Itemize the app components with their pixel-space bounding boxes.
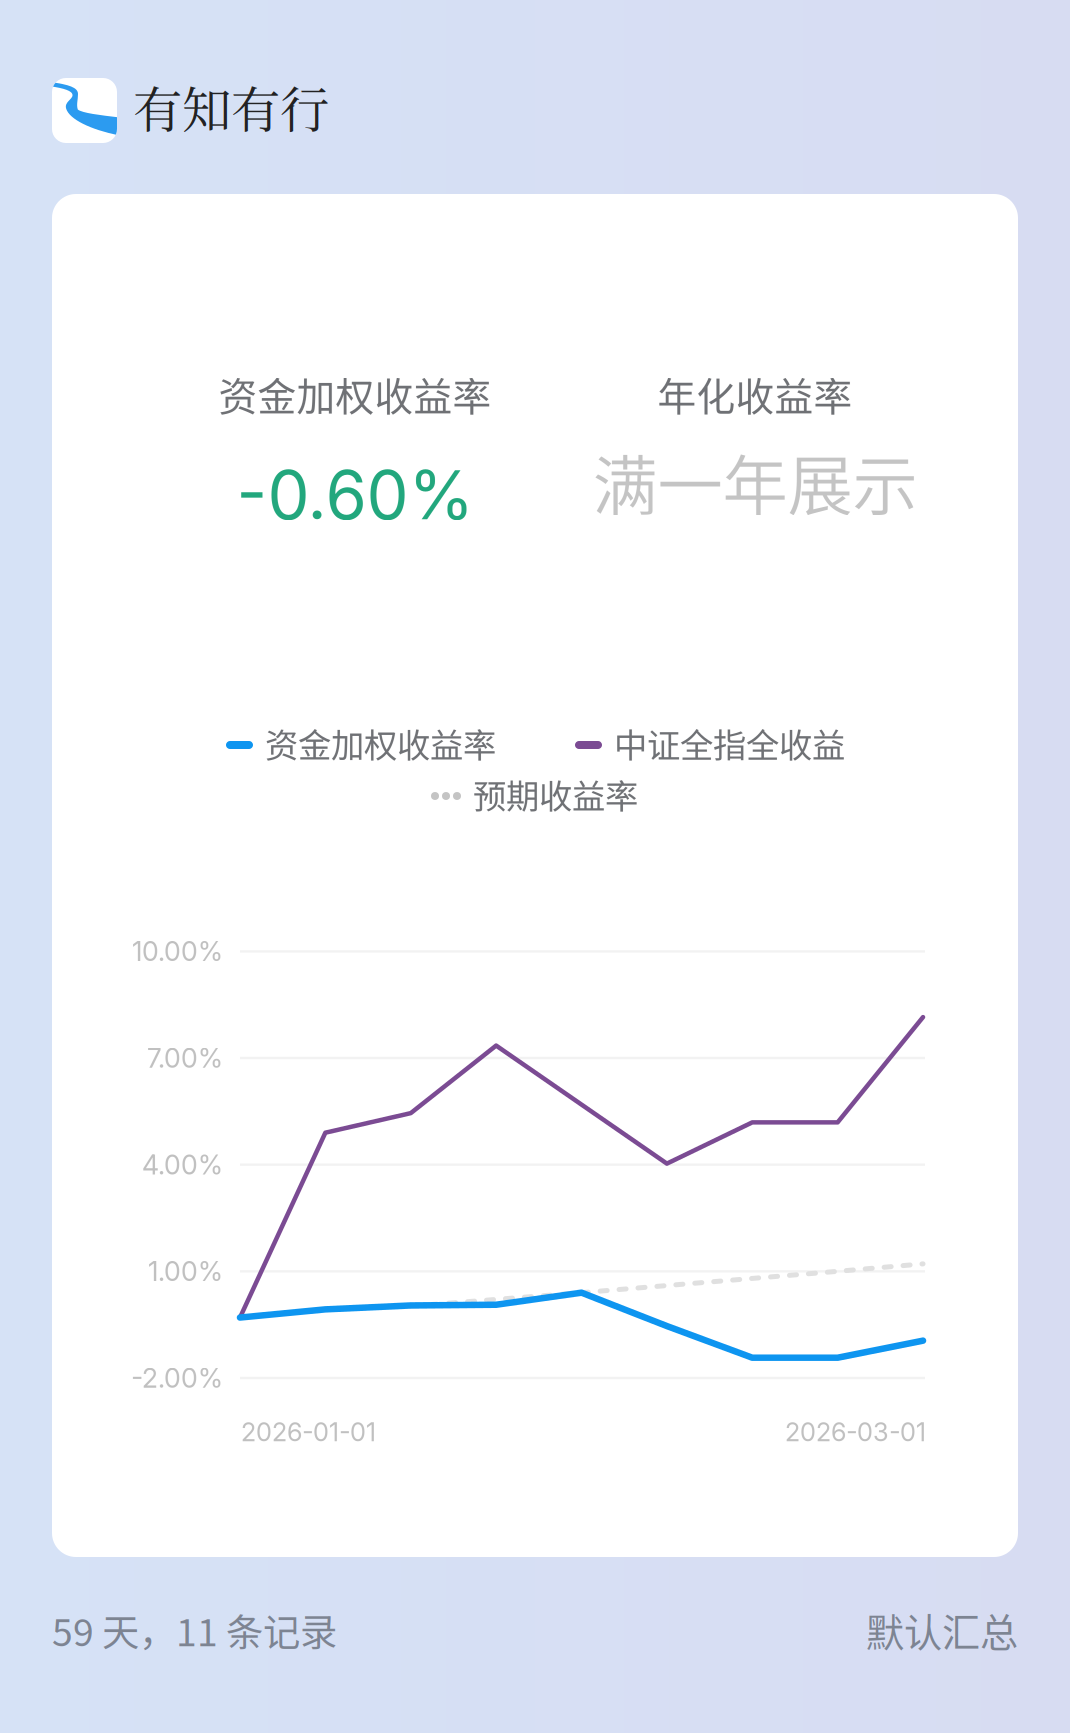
staticText: 2026-03-01 [785, 1417, 926, 1447]
staticText: -0.60% [236, 455, 473, 535]
staticText: 默认汇总 [866, 1602, 1018, 1658]
staticText: 预期收益率 [473, 770, 638, 818]
staticText: 资金加权收益率 [265, 719, 496, 767]
staticText: 10.00% [132, 935, 223, 967]
staticText: 4.00% [142, 1148, 223, 1181]
button[interactable]: 资金加权收益率 [52, 194, 1018, 1557]
staticText: -2.00% [131, 1362, 223, 1394]
staticText: 7.00% [147, 1042, 223, 1074]
staticText: 年化收益率 [657, 366, 852, 422]
button[interactable]: 有知有行 [52, 78, 452, 143]
staticText: 满一年展示 [592, 434, 917, 528]
staticText: 59 天，11 条记录 [52, 1603, 337, 1657]
staticText: 资金加权收益率 [218, 366, 491, 422]
staticText: 2026-01-01 [241, 1417, 376, 1447]
button[interactable]: 默认汇总 [866, 1602, 1018, 1658]
staticText: 1.00% [148, 1255, 223, 1287]
staticText: 有知有行 [133, 71, 329, 142]
staticText: 中证全指全收益 [614, 719, 845, 767]
